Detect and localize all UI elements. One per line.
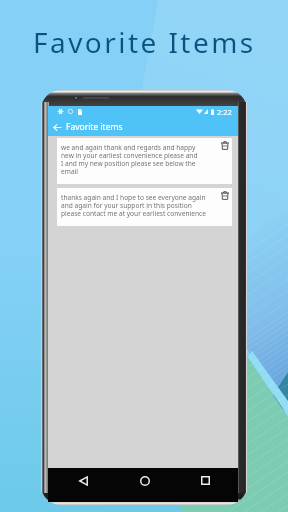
button[interactable]: Delete item <box>219 139 231 151</box>
staticText: thanks again and I hope to see everyone … <box>61 193 206 218</box>
button[interactable]: we and again thank and regards and happy… <box>57 138 232 184</box>
button[interactable]: thanks again and I hope to see everyone … <box>57 188 232 226</box>
button[interactable]: Back <box>75 472 92 489</box>
button[interactable]: Delete item <box>219 189 231 201</box>
staticText: we and again thank and regards and happy… <box>61 143 198 176</box>
staticText: 2:22 <box>217 107 232 117</box>
staticText: Favorite Items <box>33 23 256 61</box>
button[interactable]: Home <box>136 472 153 489</box>
button[interactable]: Recent apps <box>197 472 214 489</box>
button[interactable]: Navigate back <box>50 118 63 136</box>
staticText: Favorite items <box>66 121 123 133</box>
